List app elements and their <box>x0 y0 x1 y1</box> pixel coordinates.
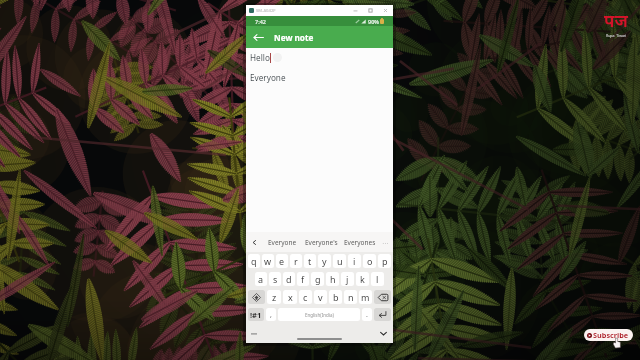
staticText: !#1 <box>250 310 262 320</box>
staticText: h <box>330 273 336 285</box>
button[interactable]: h <box>326 272 339 286</box>
staticText: c <box>303 291 308 303</box>
staticText: Everyones <box>344 238 376 247</box>
staticText: Everyone <box>250 72 286 83</box>
staticText: 90% <box>368 18 379 25</box>
button[interactable]: d <box>283 272 295 286</box>
staticText: r <box>294 255 298 267</box>
button[interactable]: . <box>362 308 372 321</box>
staticText: Subscribe <box>593 330 629 340</box>
staticText: t <box>308 255 312 267</box>
staticText: s <box>273 273 278 285</box>
staticText: e <box>279 255 285 267</box>
other: Keyboard settings <box>251 330 257 336</box>
staticText: y <box>322 255 327 267</box>
button[interactable]: c <box>299 290 312 304</box>
staticText: o <box>367 255 373 267</box>
button[interactable]: p <box>378 254 391 268</box>
staticText: p <box>382 255 388 267</box>
staticText: . <box>366 310 368 320</box>
staticText: w <box>264 255 272 267</box>
staticText: Everyone <box>268 238 297 247</box>
button[interactable]: Close <box>382 7 389 14</box>
button[interactable]: Maximize <box>367 7 374 14</box>
button[interactable]: a <box>255 272 267 286</box>
other: Cursor <box>613 338 621 348</box>
button[interactable]: j <box>341 272 354 286</box>
button[interactable]: b <box>329 290 342 304</box>
button[interactable]: !#1 <box>248 308 264 321</box>
button[interactable]: o <box>363 254 376 268</box>
staticText: 7:42 <box>255 18 266 25</box>
button[interactable]: l <box>371 272 384 286</box>
staticText: k <box>360 273 365 285</box>
button[interactable]: r <box>290 254 302 268</box>
button[interactable]: u <box>333 254 346 268</box>
staticText: f <box>301 273 305 285</box>
button[interactable]: , <box>266 308 276 321</box>
button[interactable]: Backspace <box>374 290 391 304</box>
button[interactable]: Subscribe <box>584 329 633 341</box>
staticText: l <box>376 273 379 285</box>
button[interactable]: w <box>262 254 274 268</box>
staticText: a <box>258 273 264 285</box>
button[interactable]: z <box>267 290 281 304</box>
button[interactable]: k <box>356 272 369 286</box>
button[interactable]: v <box>314 290 327 304</box>
button[interactable]: i <box>348 254 361 268</box>
button[interactable]: Shift <box>248 290 265 304</box>
button[interactable]: q <box>248 254 260 268</box>
staticText: b <box>333 291 339 303</box>
staticText: SM-A042F <box>256 8 276 14</box>
staticText: New note <box>274 32 314 43</box>
staticText: , <box>270 310 272 320</box>
button[interactable]: g <box>311 272 324 286</box>
staticText: u <box>337 255 343 267</box>
staticText: q <box>251 255 257 267</box>
staticText: Hello <box>250 52 270 63</box>
button[interactable]: t <box>304 254 316 268</box>
button[interactable]: e <box>276 254 288 268</box>
button[interactable]: m <box>359 290 372 304</box>
staticText: z <box>272 291 277 303</box>
other: Previous suggestions <box>251 239 258 246</box>
button[interactable]: y <box>318 254 331 268</box>
staticText: Everyone's <box>305 238 338 247</box>
button[interactable]: Previous suggestions <box>246 232 393 252</box>
staticText: x <box>288 291 293 303</box>
staticText: j <box>346 273 349 285</box>
button[interactable]: x <box>283 290 297 304</box>
button[interactable]: Space <box>278 308 360 321</box>
staticText: पज <box>604 9 628 32</box>
other: Hide keyboard <box>379 329 388 338</box>
button[interactable]: Back <box>252 31 264 43</box>
button[interactable]: Enter <box>374 308 391 321</box>
staticText: d <box>286 273 292 285</box>
staticText: i <box>353 255 356 267</box>
button[interactable]: s <box>269 272 281 286</box>
button[interactable]: f <box>297 272 309 286</box>
button[interactable]: n <box>344 290 357 304</box>
staticText: ⋯ <box>382 239 388 246</box>
staticText: English(India) <box>305 312 334 318</box>
staticText: m <box>361 291 370 303</box>
staticText: v <box>318 291 323 303</box>
staticText: g <box>315 273 321 285</box>
button[interactable]: Minimize <box>352 7 359 14</box>
staticText: n <box>348 291 354 303</box>
staticText: Rupa Tiwari <box>606 33 627 38</box>
